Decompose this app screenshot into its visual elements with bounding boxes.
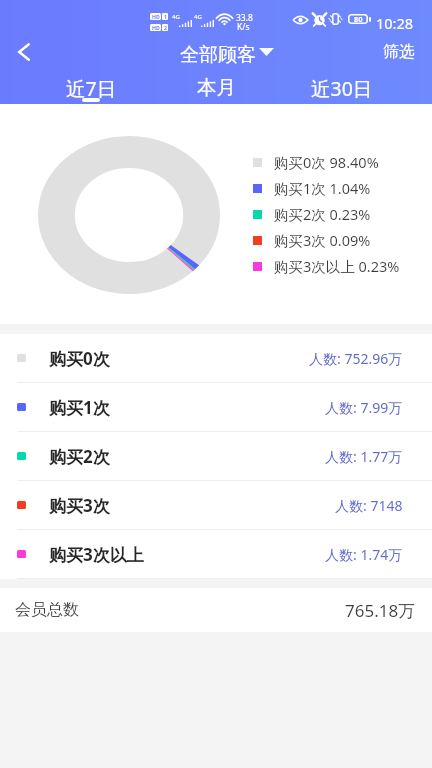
staticText: 购买2次 0.23% — [274, 204, 371, 224]
staticText: 人数: 1.77万 — [325, 447, 403, 466]
staticText: 人数: 7.99万 — [325, 398, 403, 417]
staticText: 10:28 — [376, 13, 414, 33]
staticText: 购买2次 — [49, 445, 110, 468]
button[interactable]: Back — [4, 32, 44, 72]
staticText: 购买1次 — [49, 396, 110, 419]
button[interactable]: 近30日 — [279, 68, 404, 104]
staticText: 购买3次 — [49, 494, 110, 517]
staticText: 人数: 1.74万 — [325, 545, 403, 564]
staticText: 全部顾客 — [180, 43, 256, 67]
button[interactable]: 全部顾客 — [176, 41, 278, 69]
button[interactable]: 筛选 — [366, 39, 432, 65]
button[interactable]: 购买3次以上 — [0, 530, 432, 579]
staticText: 765.18万 — [345, 599, 416, 622]
staticText: 购买3次 0.09% — [274, 230, 371, 250]
staticText: HD — [152, 13, 160, 20]
staticText: 33.8 — [236, 12, 253, 24]
staticText: 4G — [172, 13, 180, 21]
staticText: 2 — [164, 24, 167, 31]
button[interactable]: 购买2次 — [0, 432, 432, 481]
button[interactable]: 本月 — [154, 68, 279, 104]
button[interactable]: 会员总数 — [0, 588, 432, 632]
button[interactable]: 购买1次 — [0, 383, 432, 432]
staticText: 近7日 — [66, 75, 117, 102]
staticText: 人数: 7148 — [335, 496, 403, 515]
staticText: 本月 — [197, 75, 236, 100]
staticText: 80 — [354, 14, 363, 24]
staticText: 购买0次 98.40% — [274, 152, 379, 172]
staticText: 筛选 — [383, 42, 415, 62]
button[interactable]: 购买0次 — [0, 334, 432, 383]
staticText: 会员总数 — [15, 600, 79, 620]
staticText: 4G — [194, 13, 202, 21]
staticText: 人数: 752.96万 — [309, 349, 403, 368]
staticText: K/s — [237, 21, 250, 33]
button[interactable]: 近7日 — [28, 68, 154, 104]
staticText: 购买3次以上 — [49, 543, 144, 566]
staticText: 1 — [164, 13, 167, 20]
staticText: HD — [152, 24, 160, 31]
staticText: 购买3次以上 0.23% — [274, 256, 400, 276]
button[interactable]: 购买3次 — [0, 481, 432, 530]
staticText: 购买1次 1.04% — [274, 178, 371, 198]
staticText: 购买0次 — [49, 347, 110, 370]
staticText: 近30日 — [311, 75, 373, 102]
